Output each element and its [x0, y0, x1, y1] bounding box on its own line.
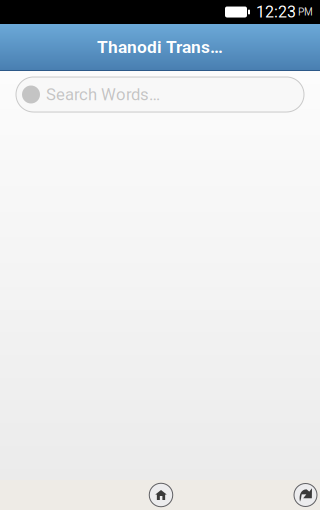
button[interactable]: Search Words… [16, 77, 304, 112]
staticText: PM [298, 6, 313, 18]
button[interactable]: Share [294, 483, 317, 506]
staticText: 12:23 [256, 3, 296, 21]
staticText: Search Words… [46, 85, 160, 104]
staticText: Thanodi Trans… [97, 37, 223, 57]
button[interactable]: Home [149, 483, 173, 507]
